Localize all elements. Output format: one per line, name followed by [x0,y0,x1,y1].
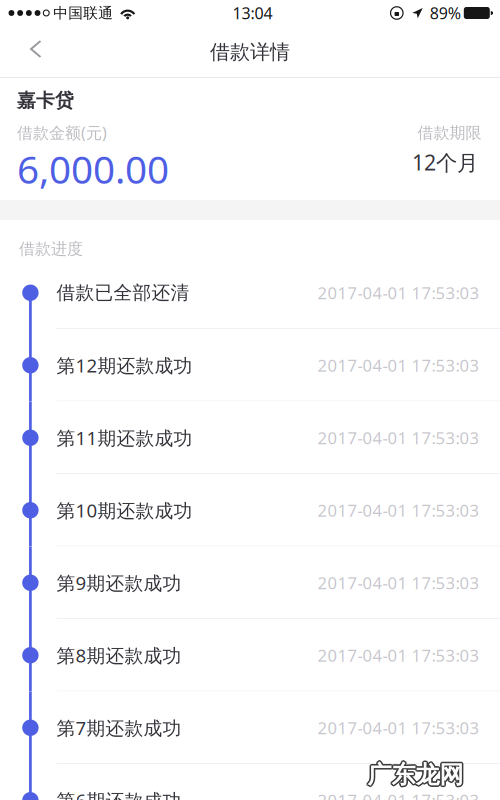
staticText: 2017-04-01 17:53:03 [317,716,479,739]
staticText: 13:04 [232,2,272,24]
staticText: 广东龙网 [367,760,463,789]
button[interactable]: 第12期还款成功 [0,329,500,401]
staticText: 广东龙网 [369,761,465,791]
staticText: 第8期还款成功 [56,643,181,668]
staticText: 广东龙网 [369,760,465,789]
staticText: 2017-04-01 17:53:03 [317,281,479,304]
staticText: 借款期限 [417,123,481,143]
button[interactable]: Back [0,30,67,73]
staticText: 中国联通 [53,4,113,22]
button[interactable]: 借款已全部还清 [0,256,500,329]
staticText: 广东龙网 [367,758,463,788]
staticText: 广东龙网 [366,761,462,791]
staticText: 89% [430,2,461,24]
staticText: 嘉卡贷 [17,89,74,112]
staticText: 2017-04-01 17:53:03 [317,644,479,667]
staticText: 2017-04-01 17:53:03 [317,571,479,594]
staticText: 广东龙网 [367,761,463,791]
staticText: 第7期还款成功 [56,715,181,740]
staticText: 6,000.00 [17,143,169,194]
staticText: 12个月 [412,148,478,176]
button[interactable]: 第9期还款成功 [0,546,500,619]
button[interactable]: 第7期还款成功 [0,691,500,764]
staticText: 第9期还款成功 [56,570,181,595]
staticText: 第6期还款成功 [56,788,181,800]
button[interactable]: 第6期还款成功 [0,764,500,800]
staticText: 借款进度 [19,239,83,259]
staticText: 2017-04-01 17:53:03 [317,499,479,522]
staticText: 2017-04-01 17:53:03 [317,789,479,800]
button[interactable]: 第8期还款成功 [0,619,500,691]
staticText: 广东龙网 [366,759,462,788]
staticText: 第11期还款成功 [56,425,192,450]
button[interactable]: 第11期还款成功 [0,401,500,474]
staticText: 借款已全部还清 [56,281,189,304]
staticText: 第10期还款成功 [56,498,192,523]
staticText: 借款详情 [210,40,290,64]
staticText: 借款金额(元) [17,122,107,143]
staticText: 2017-04-01 17:53:03 [317,426,479,449]
button[interactable]: 第10期还款成功 [0,474,500,546]
staticText: 广东龙网 [369,759,465,788]
staticText: 第12期还款成功 [56,353,192,378]
staticText: 2017-04-01 17:53:03 [317,354,479,377]
staticText: 广东龙网 [366,760,462,789]
